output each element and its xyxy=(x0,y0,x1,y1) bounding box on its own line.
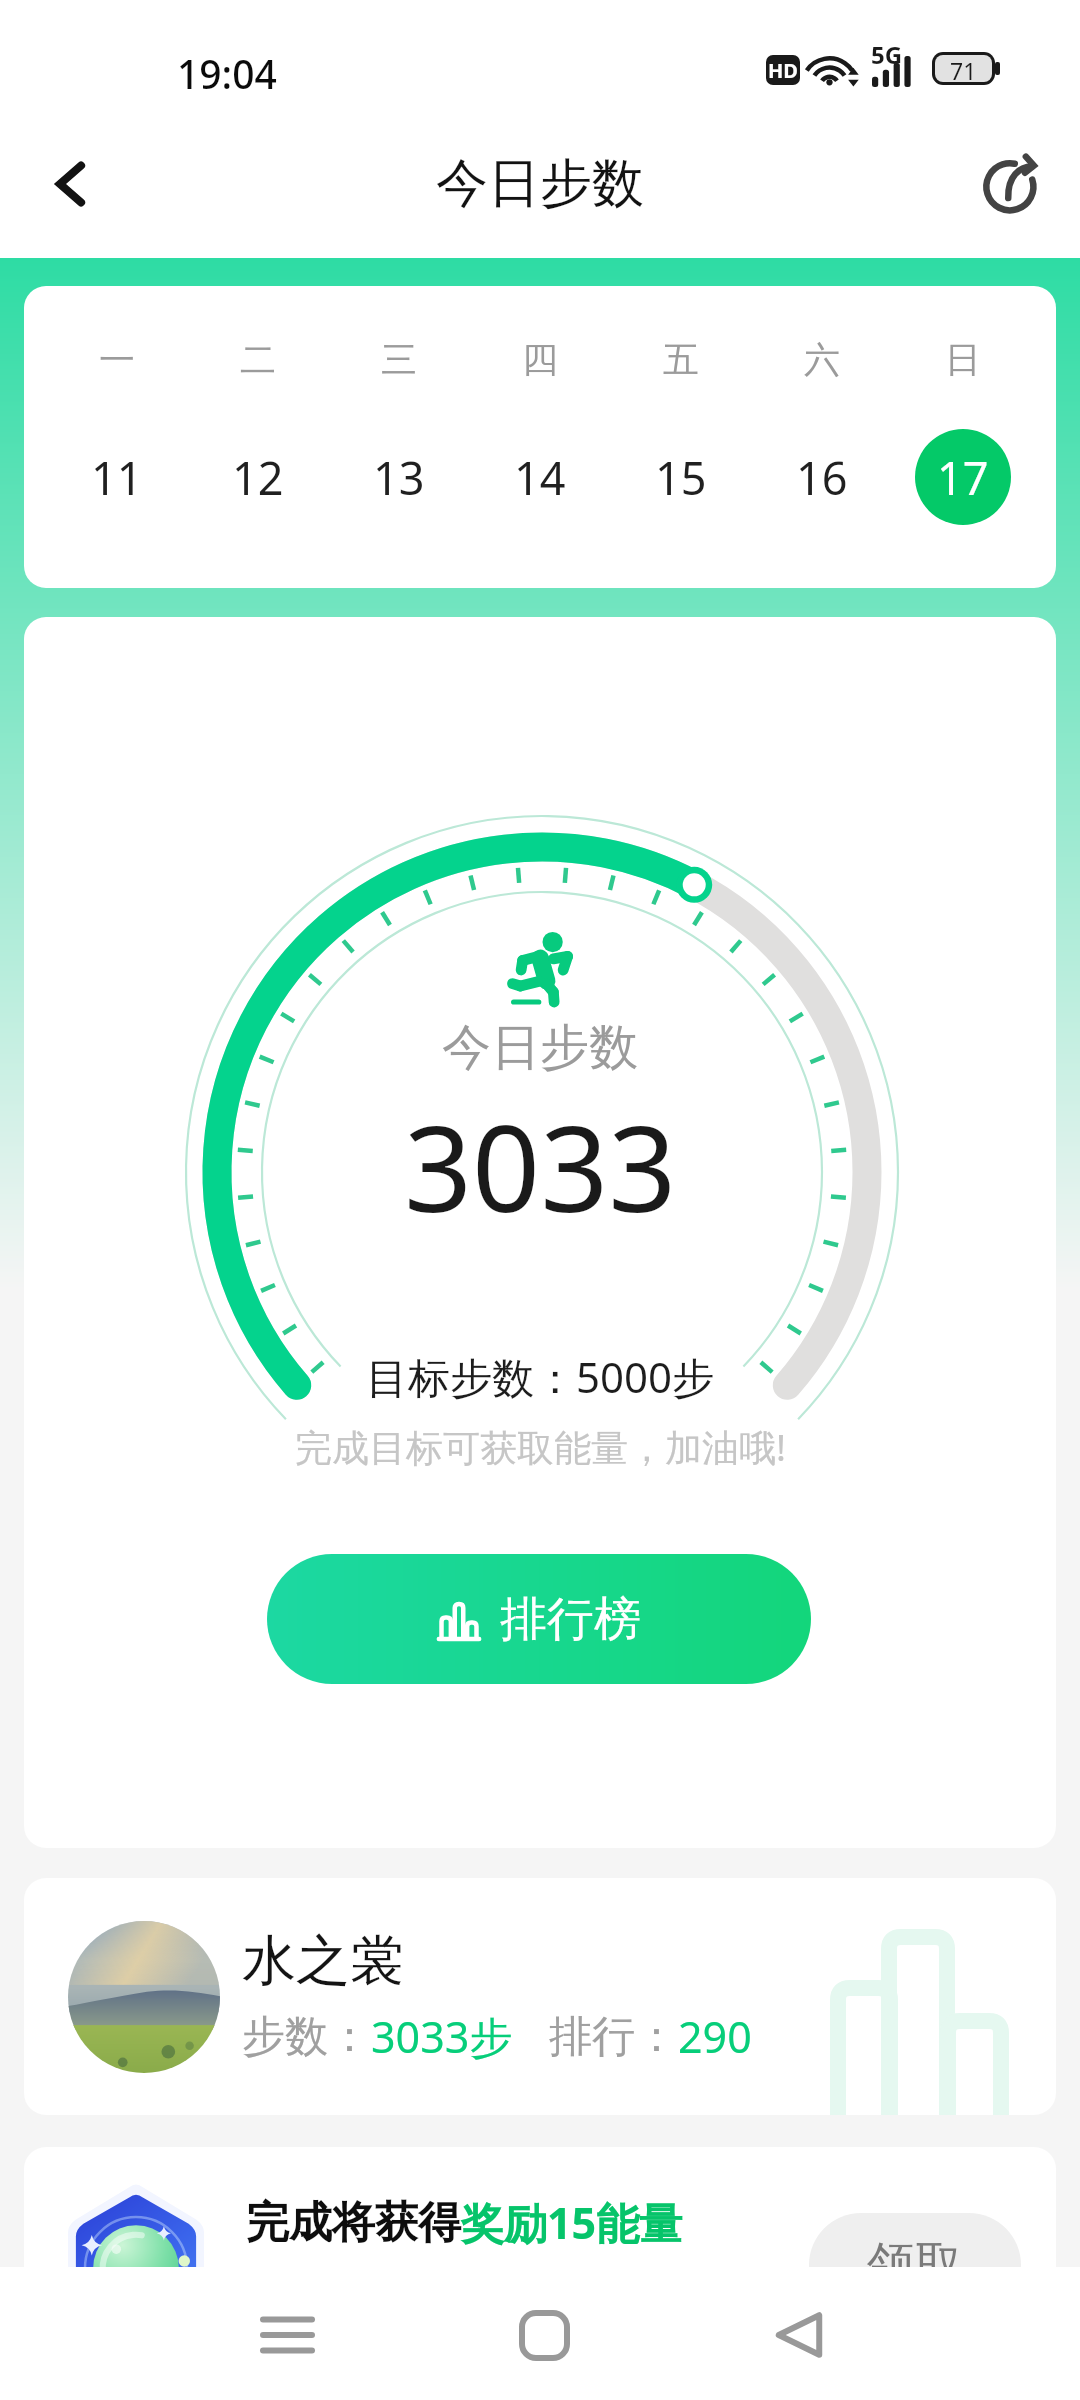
button[interactable]: 15 xyxy=(633,429,729,525)
staticText: 排行： xyxy=(549,2010,678,2064)
staticText: 今日步数 xyxy=(442,1017,638,1079)
button[interactable]: Back xyxy=(28,141,114,227)
staticText: 四 xyxy=(522,337,558,382)
staticText: 水之裳 xyxy=(242,1927,404,1995)
staticText: 16 xyxy=(796,447,848,508)
button[interactable]: 17 xyxy=(915,429,1011,525)
staticText: 15 xyxy=(655,447,707,508)
button[interactable]: Home xyxy=(484,2275,604,2395)
staticText: 排行榜 xyxy=(500,1590,641,1649)
button[interactable]: 12 xyxy=(210,429,306,525)
button[interactable]: 水之裳 xyxy=(24,1878,1056,2115)
staticText: 3033 xyxy=(404,1085,677,1247)
staticText: HD xyxy=(768,57,798,84)
button[interactable]: Recent apps xyxy=(227,2275,347,2395)
button[interactable]: 16 xyxy=(774,429,870,525)
staticText: 完成将获得 xyxy=(246,2196,461,2250)
staticText: 13 xyxy=(373,447,425,508)
staticText: 六 xyxy=(804,337,840,382)
staticText: 领取 xyxy=(867,2235,963,2295)
staticText: 71 xyxy=(950,55,977,82)
staticText: 19:04 xyxy=(177,47,277,100)
button[interactable]: 13 xyxy=(351,429,447,525)
button[interactable]: Share xyxy=(968,141,1054,227)
staticText: 日 xyxy=(945,337,981,382)
staticText: 一 xyxy=(99,337,135,382)
button[interactable]: 11 xyxy=(69,429,165,525)
staticText: 17 xyxy=(937,447,989,508)
staticText: 今日步数 xyxy=(436,151,644,217)
button[interactable]: Back xyxy=(739,2275,859,2395)
staticText: 二 xyxy=(240,337,276,382)
staticText: 步数： xyxy=(242,2010,371,2064)
button[interactable]: 领取 xyxy=(809,2213,1021,2317)
button[interactable]: 排行榜 xyxy=(267,1554,811,1684)
staticText: 三 xyxy=(381,337,417,382)
staticText: 5G xyxy=(871,38,903,71)
staticText: 奖励15能量 xyxy=(461,2193,683,2252)
button[interactable]: 14 xyxy=(492,429,588,525)
staticText: 五 xyxy=(663,337,699,382)
staticText: 14 xyxy=(514,447,566,508)
staticText: 290 xyxy=(678,2007,752,2066)
staticText: 11 xyxy=(91,447,143,508)
staticText: 目标步数：5000步 xyxy=(366,1348,715,1405)
staticText: 完成目标可获取能量，加油哦! xyxy=(295,1421,786,1472)
staticText: 3033步 xyxy=(371,2007,513,2066)
staticText: 12 xyxy=(232,447,284,508)
